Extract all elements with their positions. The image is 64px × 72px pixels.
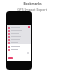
button[interactable] bbox=[7, 45, 31, 48]
button[interactable] bbox=[7, 48, 31, 51]
button[interactable] bbox=[7, 38, 31, 41]
button[interactable] bbox=[8, 57, 13, 59]
staticText: GPS Impact Export bbox=[17, 7, 47, 12]
button[interactable] bbox=[7, 35, 31, 38]
button[interactable] bbox=[7, 26, 31, 29]
button[interactable]: Add bbox=[28, 26, 30, 28]
button[interactable] bbox=[7, 29, 31, 32]
button[interactable] bbox=[7, 41, 31, 44]
button[interactable] bbox=[7, 32, 31, 35]
staticText: Bookmarks bbox=[23, 2, 42, 6]
